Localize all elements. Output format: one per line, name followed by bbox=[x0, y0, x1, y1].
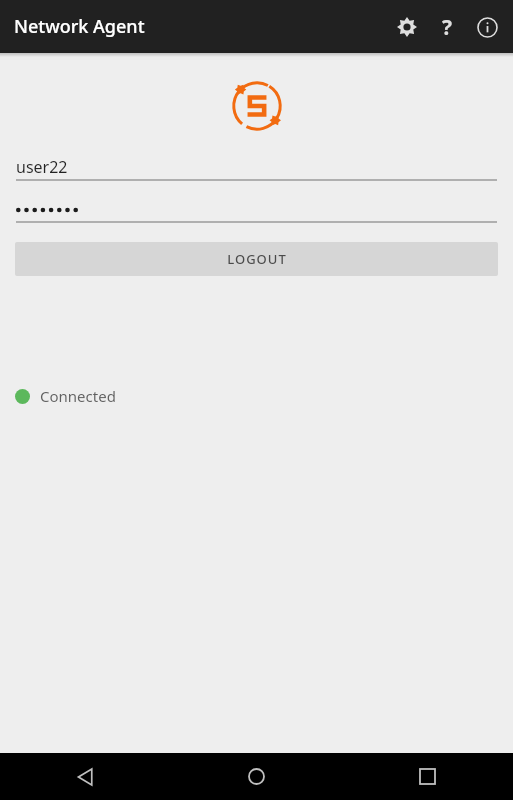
button[interactable]: user22 bbox=[16, 155, 497, 179]
button[interactable]: Recents bbox=[342, 753, 513, 800]
staticText: Connected bbox=[40, 386, 116, 406]
button[interactable]: Help bbox=[427, 7, 467, 47]
button[interactable]: About bbox=[467, 7, 507, 47]
button[interactable]: Connected bbox=[0, 380, 513, 412]
button[interactable]: Settings bbox=[387, 7, 427, 47]
button[interactable]: Back bbox=[0, 753, 171, 800]
staticText: LOGOUT bbox=[227, 250, 287, 268]
staticText: user22 bbox=[16, 156, 68, 178]
button[interactable]: Home bbox=[171, 753, 342, 800]
button[interactable]: LOGOUT bbox=[15, 242, 498, 276]
button[interactable] bbox=[16, 197, 497, 221]
staticText: Network Agent bbox=[14, 14, 145, 39]
staticText: ? bbox=[442, 13, 453, 42]
